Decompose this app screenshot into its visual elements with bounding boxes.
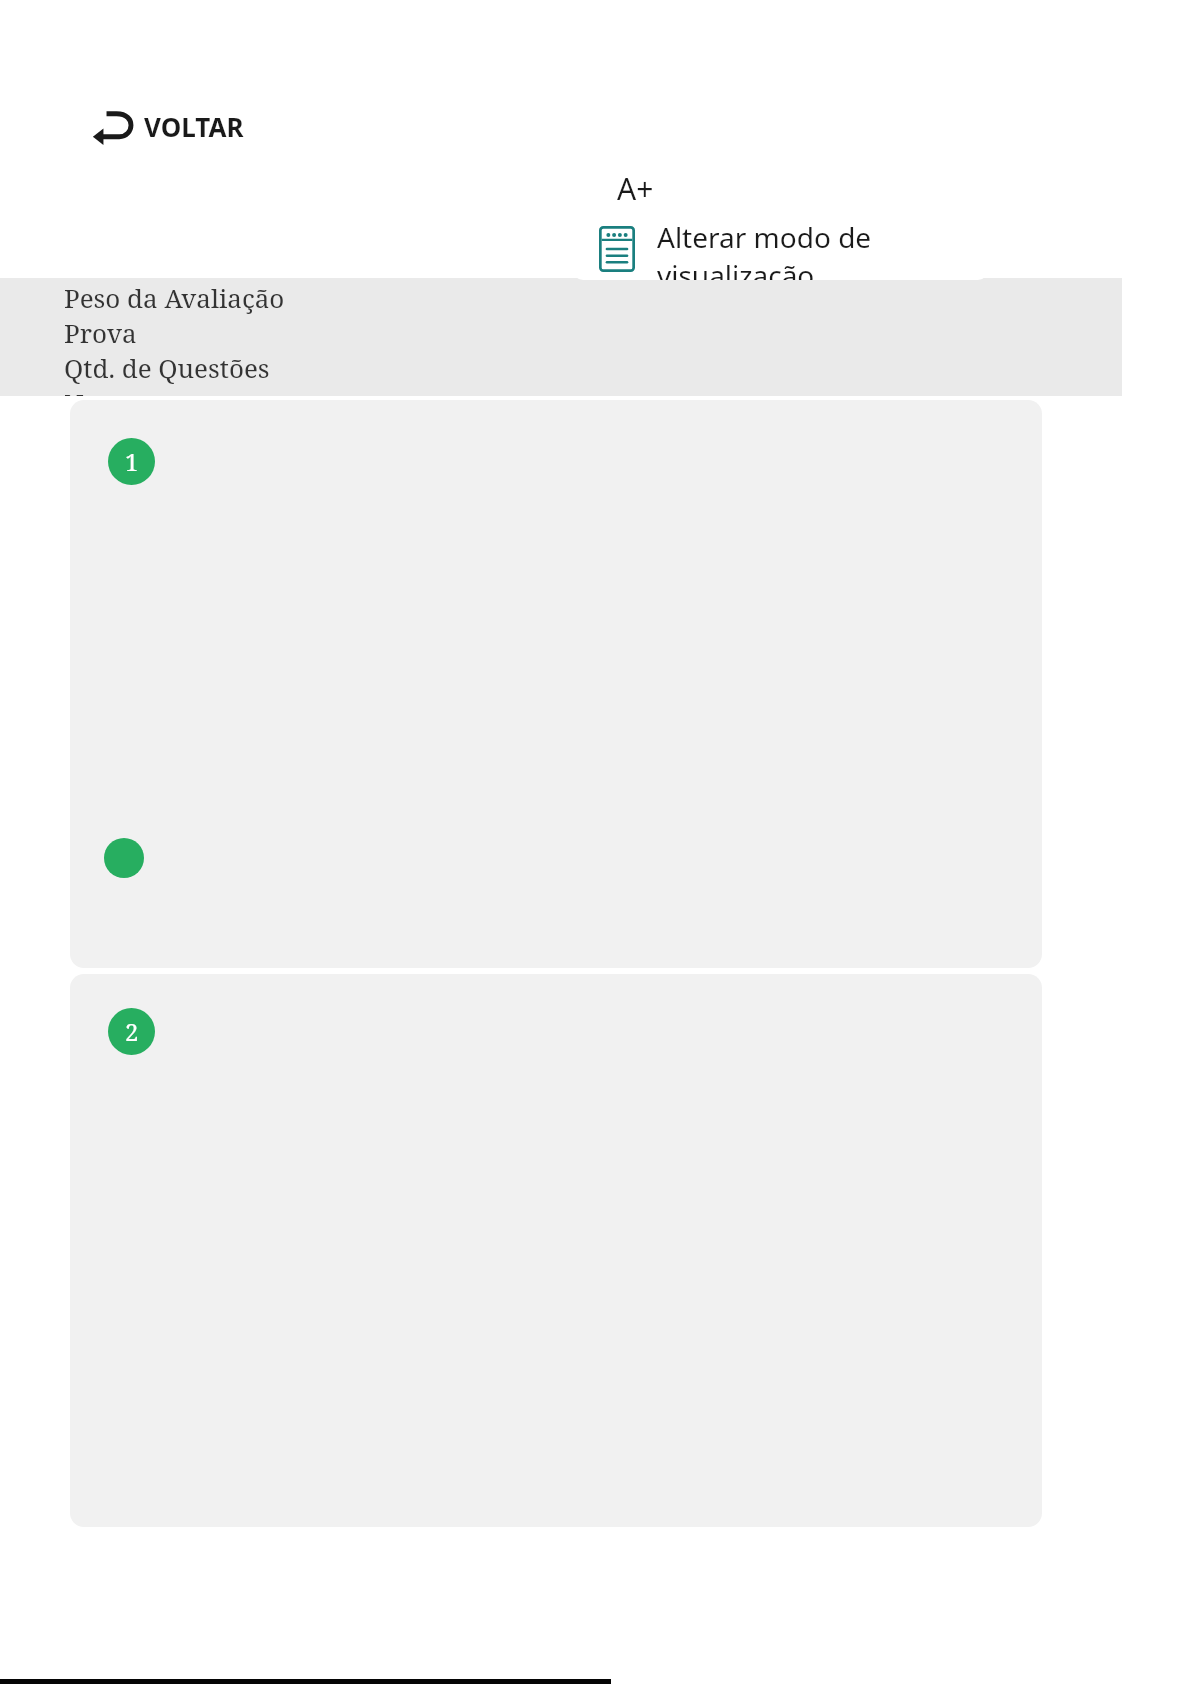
staticText: 1 [125,445,139,478]
staticText: Peso da Avaliação [64,280,285,315]
staticText: Qtd. de Questões [64,350,270,385]
other: Alterar modo de visualização [599,226,635,272]
staticText: A+ [617,168,654,209]
staticText: Alterar modo de visualização [657,218,988,280]
staticText: Nota [64,385,123,396]
button[interactable]: 2 [70,974,1042,1527]
staticText: Prova [64,315,137,350]
staticText: VOLTAR [144,109,244,144]
button[interactable]: A+ [578,158,692,218]
button[interactable]: 1 [70,400,1042,968]
button[interactable]: Alterar modo de visualização [573,218,988,280]
staticText: 2 [125,1015,139,1048]
button[interactable]: VOLTAR [88,104,248,148]
